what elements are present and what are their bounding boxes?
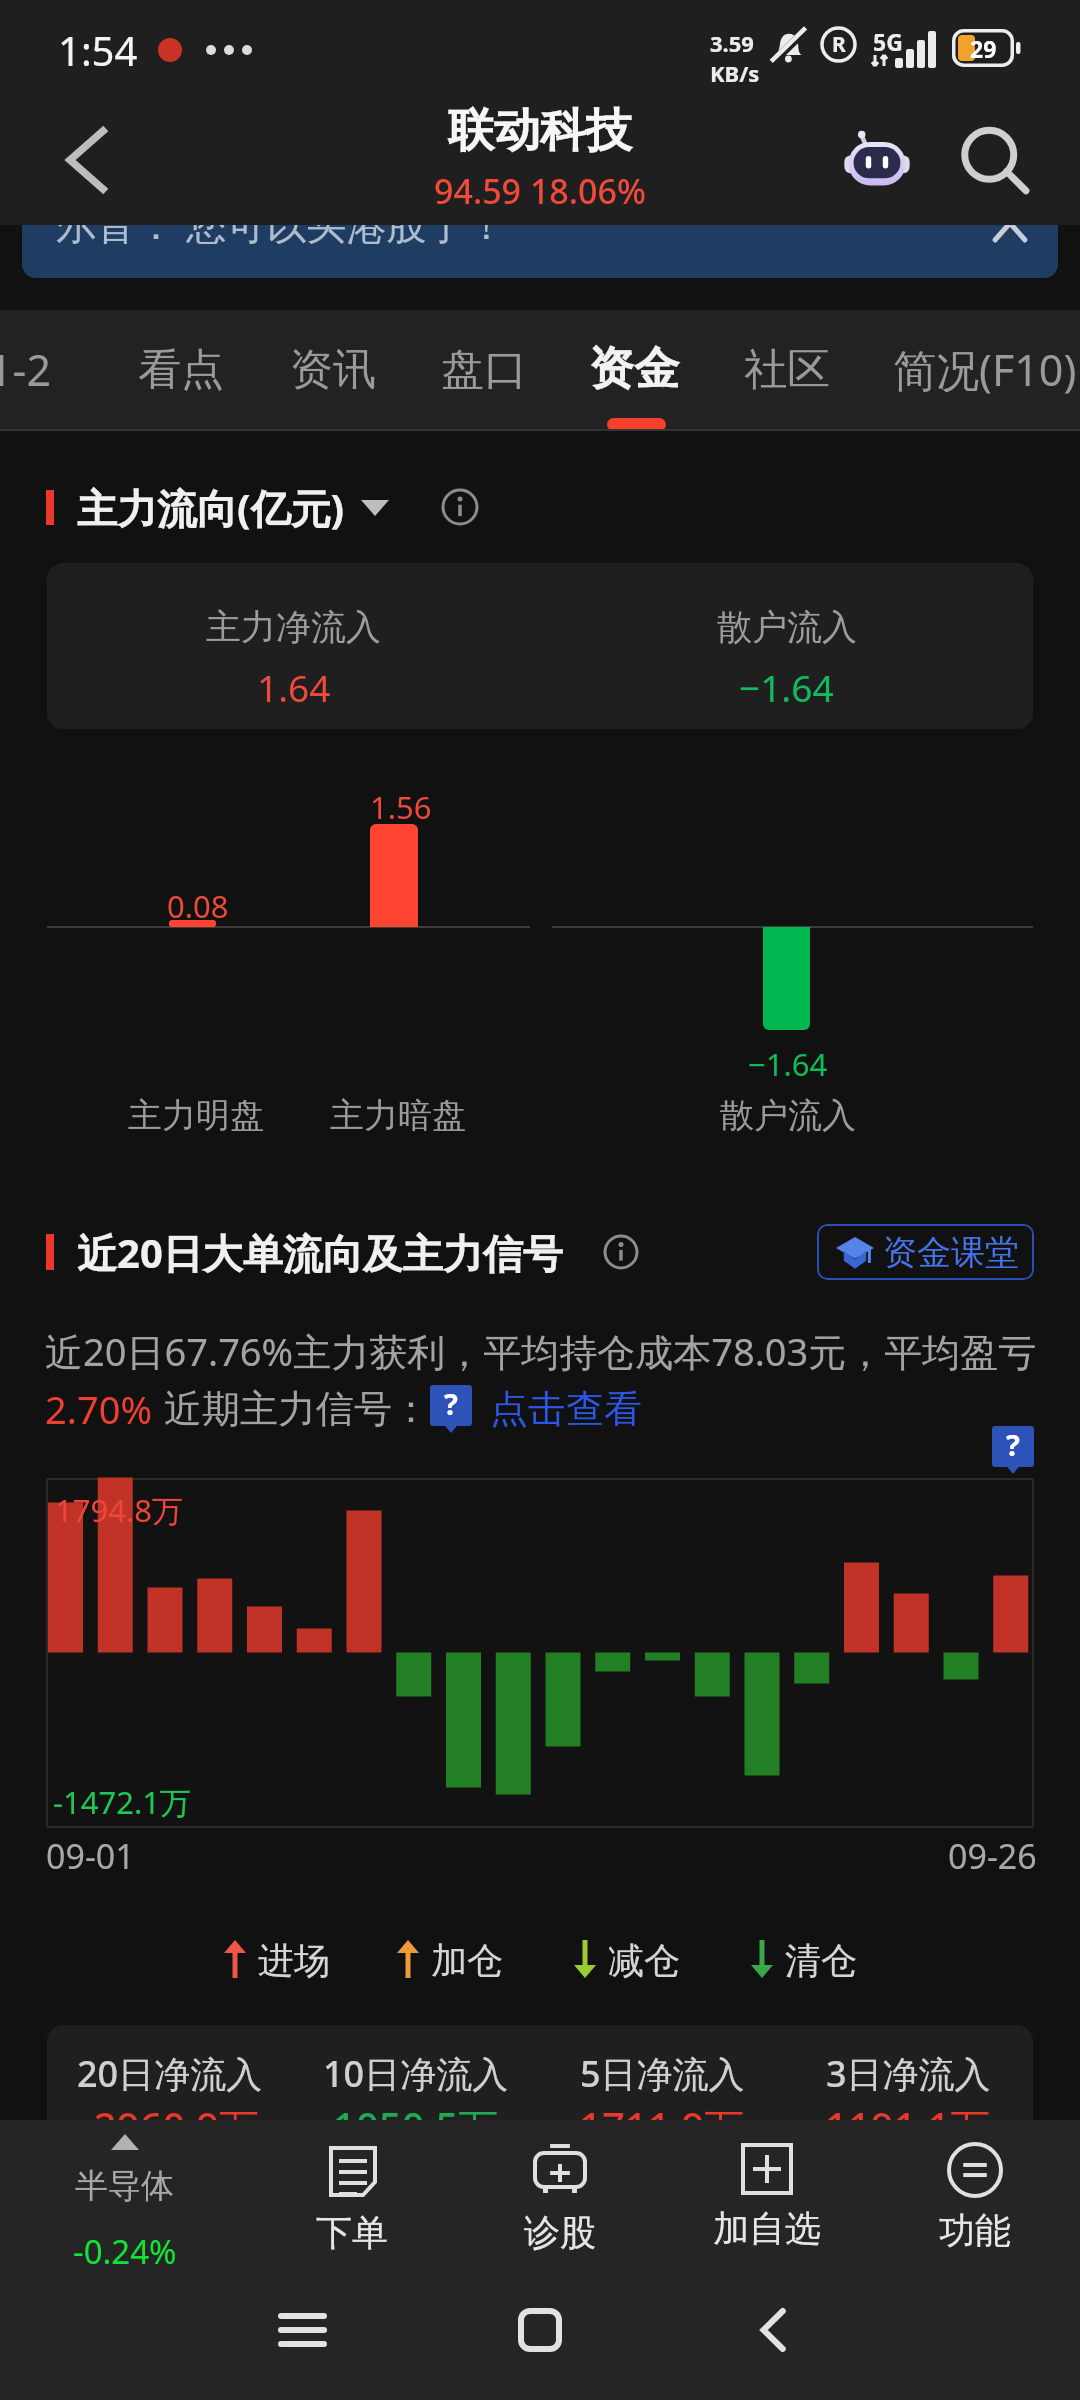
staticText: 1794.8万 [55, 1489, 183, 1531]
staticText: 0.08 [167, 885, 229, 927]
staticText: 20日净流入 [77, 2049, 263, 2098]
staticText: 2.70% [45, 1383, 152, 1435]
staticText: 资讯 [290, 343, 376, 397]
staticText: 下单 [316, 2210, 388, 2255]
staticText: 半导体 [75, 2165, 174, 2207]
staticText: 3日净流入 [826, 2049, 991, 2098]
staticText: 加自选 [713, 2206, 821, 2251]
button[interactable]: Info [438, 472, 482, 542]
button[interactable]: 主力流向(亿元) [77, 472, 389, 542]
staticText: 3.59 [710, 28, 754, 58]
staticText: 29 [970, 33, 997, 64]
button[interactable]: 加自选 [682, 2120, 852, 2270]
button[interactable]: 简况(F10) [893, 310, 1077, 431]
button[interactable]: Back [0, 100, 160, 225]
button[interactable]: 资金课堂 [817, 1224, 1034, 1280]
staticText: 1711.9万 [579, 2099, 745, 2154]
button[interactable]: 下单 [267, 2120, 437, 2270]
staticText: 09-26 [948, 1833, 1037, 1879]
staticText: 简况(F10) [893, 340, 1077, 399]
button[interactable]: 20日净流入 [47, 2025, 1033, 2205]
staticText: 盘口 [441, 343, 527, 397]
staticText: KB/s [710, 58, 760, 88]
staticText: 94.59 18.06% [434, 168, 646, 214]
button[interactable]: Search [945, 112, 1045, 212]
staticText: 09-01 [46, 1833, 135, 1879]
button[interactable]: 尔音： 您可以买港股了！ [22, 182, 1058, 278]
staticText: 诊股 [524, 2210, 596, 2255]
button[interactable]: Back [724, 2290, 824, 2370]
button[interactable]: 盘口 [441, 310, 527, 431]
staticText: 10日净流入 [323, 2049, 509, 2098]
button[interactable]: 近20日大单流向及主力信号 [77, 1214, 563, 1290]
staticText: 1-2 [0, 340, 52, 399]
button[interactable]: Help [992, 1426, 1034, 1474]
staticText: 看点 [138, 343, 224, 397]
button[interactable]: 资金 [589, 310, 679, 431]
staticText: −1.64 [748, 1043, 828, 1085]
staticText: 主力净流入 [206, 605, 381, 649]
button[interactable]: 1-2 [0, 310, 52, 431]
staticText: 资金 [589, 341, 679, 398]
button[interactable]: 看点 [138, 310, 224, 431]
button[interactable]: 功能 [890, 2120, 1060, 2270]
staticText: ? [1006, 1425, 1020, 1464]
staticText: 5G [873, 26, 903, 57]
staticText: 点击查看 [490, 1385, 642, 1433]
staticText: 5日净流入 [580, 2049, 745, 2098]
staticText: -0.24% [73, 2229, 177, 2274]
button[interactable]: 资讯 [290, 310, 376, 431]
staticText: 进场 [258, 1938, 330, 1983]
staticText: 散户流入 [717, 605, 857, 649]
staticText: 资金课堂 [883, 1231, 1019, 1274]
staticText: 1.56 [370, 786, 432, 828]
staticText: -2960.9万 [81, 2099, 260, 2154]
button[interactable]: 主力净流入 [47, 563, 1033, 729]
button[interactable]: Home [490, 2290, 590, 2370]
staticText: 散户流入 [720, 1094, 856, 1137]
staticText: 加仓 [431, 1938, 503, 1983]
staticText: R [832, 30, 846, 59]
staticText: 主力暗盘 [330, 1094, 466, 1137]
button[interactable]: 诊股 [475, 2120, 645, 2270]
staticText: 1050.5万 [333, 2099, 499, 2154]
staticText: 1191.1万 [825, 2099, 991, 2154]
staticText: 1:54 [58, 23, 138, 77]
staticText: ? [444, 1384, 458, 1423]
staticText: 近20日67.76%主力获利，平均持仓成本78.03元，平均盈亏 [45, 1325, 1037, 1377]
staticText: 功能 [939, 2208, 1011, 2253]
staticText: 联动科技 [448, 102, 632, 160]
button[interactable]: Help [430, 1385, 472, 1433]
button[interactable]: Info [598, 1214, 644, 1290]
staticText: 主力明盘 [128, 1094, 264, 1137]
staticText: 社区 [744, 343, 830, 397]
staticText: 1.64 [257, 662, 331, 712]
staticText: −1.64 [739, 662, 834, 712]
staticText: 近20日大单流向及主力信号 [77, 1225, 563, 1280]
button[interactable]: Recent apps [252, 2290, 352, 2370]
button[interactable]: 半导体 [20, 2128, 229, 2278]
staticText: 减仓 [608, 1938, 680, 1983]
button[interactable]: AI assistant [831, 115, 923, 207]
staticText: 近期主力信号： [164, 1385, 430, 1433]
staticText: 主力流向(亿元) [77, 480, 345, 535]
staticText: -1472.1万 [53, 1781, 191, 1823]
staticText: 清仓 [785, 1938, 857, 1983]
staticText: 尔音： 您可以买港股了！ [56, 196, 507, 251]
button[interactable]: 社区 [744, 310, 830, 431]
